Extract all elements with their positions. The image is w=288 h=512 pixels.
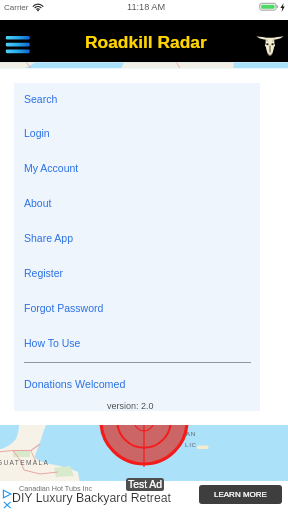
staticText: Test Ad xyxy=(128,479,163,491)
staticText: 11:18 AM xyxy=(127,2,166,12)
staticText: version: 2.0 xyxy=(107,401,154,411)
button[interactable]: LEARN MORE xyxy=(199,485,282,504)
staticText: Forgot Password xyxy=(24,302,104,314)
staticText: AN xyxy=(186,430,196,437)
button[interactable]: Forgot Password xyxy=(14,290,260,325)
staticText: How To Use xyxy=(24,337,81,349)
staticText: LIC xyxy=(185,441,197,448)
staticText: LEARN MORE xyxy=(214,490,267,499)
button[interactable]: Search xyxy=(14,81,260,116)
button[interactable]: About xyxy=(14,185,260,220)
staticText: Share App xyxy=(24,232,74,244)
staticText: My Account xyxy=(24,162,79,174)
staticText: Donations Welcomed xyxy=(24,378,126,390)
button[interactable]: Donations Welcomed xyxy=(14,371,260,397)
staticText: Roadkill Radar xyxy=(85,32,207,51)
button[interactable]: Login xyxy=(14,115,260,150)
staticText: About xyxy=(24,197,52,209)
staticText: Search xyxy=(24,93,58,105)
staticText: Canadian Hot Tubs Inc xyxy=(19,484,93,492)
other: Ad choices xyxy=(2,489,13,499)
staticText: DIY Luxury Backyard Retreat xyxy=(12,491,172,505)
button[interactable]: Roadkill Radar logo xyxy=(256,34,284,57)
staticText: Carrier xyxy=(4,3,29,12)
button[interactable]: My Account xyxy=(14,150,260,185)
button[interactable]: How To Use xyxy=(14,325,260,360)
button[interactable]: Share App xyxy=(14,220,260,255)
other: Close ad xyxy=(2,500,13,510)
button[interactable]: Open navigation menu xyxy=(2,32,34,54)
staticText: Register xyxy=(24,267,64,279)
button[interactable]: Register xyxy=(14,255,260,290)
button[interactable]: Ad choices xyxy=(0,481,288,512)
staticText: Login xyxy=(24,127,50,139)
staticText: GUATEMALA xyxy=(0,459,50,466)
